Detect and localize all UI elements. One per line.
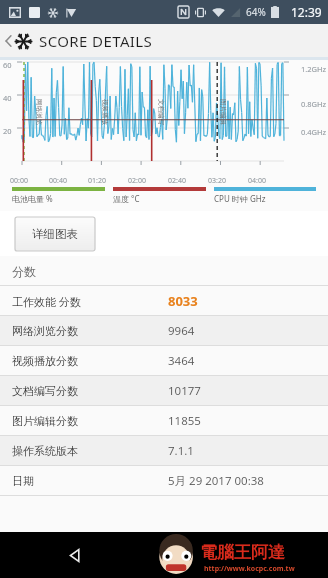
staticText: 详细图表 [32,227,78,241]
staticText: 7.1.1 [168,443,194,459]
button[interactable]: 操作系统版本 [0,436,328,466]
staticText: 00:00 [10,176,28,186]
button[interactable]: 图片编辑分数 [0,406,328,436]
staticText: 网络浏览 [35,99,43,125]
staticText: 8033 [168,292,198,310]
staticText: 图片编辑分数 [12,414,78,428]
staticText: 10177 [168,383,201,399]
staticText: 0.8GHz [301,99,327,109]
button[interactable]: 工作效能 分数 [0,286,328,316]
staticText: 0.4GHz [301,127,327,137]
staticText: 温度 °C [113,193,140,204]
button[interactable]: 文档编写分数 [0,376,328,406]
staticText: 文档编写 [157,99,165,125]
staticText: 网络浏览分数 [12,324,78,338]
staticText: 视频播放 [101,99,109,125]
staticText: SCORE DETAILS [39,31,153,51]
staticText: 电池电量 % [12,193,53,204]
button[interactable]: 详细图表 [15,217,95,251]
staticText: 日期 [12,474,34,488]
staticText: 60 [3,60,12,70]
staticText: 00:40 [49,176,67,186]
staticText: 64% [246,5,266,19]
staticText: 工作效能 分数 [12,294,81,309]
staticText: 20 [3,126,12,136]
staticText: 04:00 [248,176,266,186]
staticText: 1.2GHz [301,64,327,74]
staticText: 02:00 [128,176,146,186]
staticText: 文档编写分数 [12,384,78,398]
staticText: 分数 [12,264,36,279]
button[interactable]: Back [0,27,161,55]
staticText: 40 [3,93,12,103]
staticText: 01:20 [88,176,106,186]
staticText: 视频播放分数 [12,354,78,368]
staticText: 12:39 [291,4,322,20]
staticText: 11855 [168,413,201,429]
staticText: 操作系统版本 [12,444,78,458]
staticText: 图片编辑 [219,99,227,125]
button[interactable]: 网络浏览分数 [0,316,328,346]
staticText: 電腦王阿達 [200,542,285,563]
staticText: CPU 时钟 GHz [214,193,266,204]
staticText: http://www.kocpc.com.tw [204,564,295,574]
button[interactable]: 视频播放分数 [0,346,328,376]
staticText: 02:40 [168,176,186,186]
staticText: 03:20 [208,176,226,186]
staticText: 9964 [168,323,195,339]
button[interactable]: 日期 [0,466,328,496]
button[interactable]: Back [58,538,92,572]
button[interactable]: Home [161,538,195,572]
staticText: 5月 29 2017 00:38 [168,473,264,489]
staticText: 3464 [168,353,195,369]
